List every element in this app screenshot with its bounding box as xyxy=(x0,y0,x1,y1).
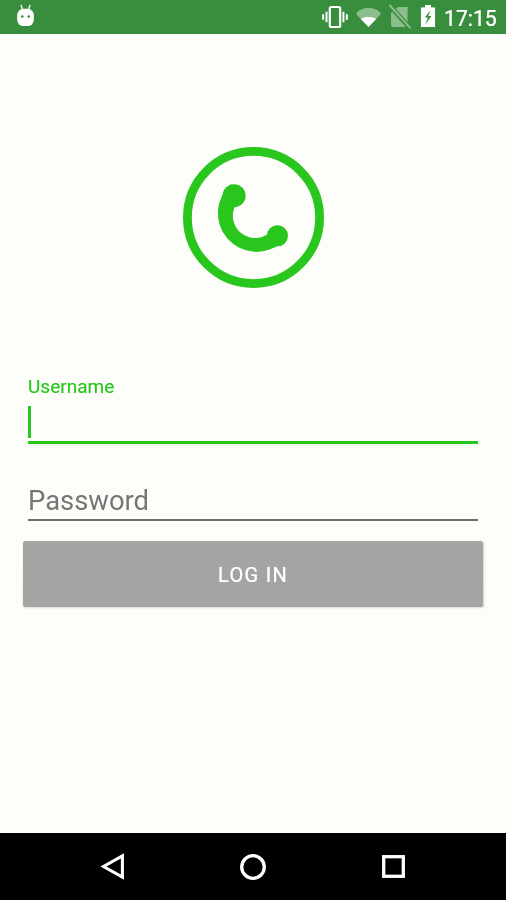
staticText: LOG IN xyxy=(218,563,288,586)
staticText: 17:15 xyxy=(444,6,497,31)
button[interactable]: Username xyxy=(28,373,478,446)
button[interactable]: Back xyxy=(74,833,152,900)
button[interactable]: Recent apps xyxy=(354,833,432,900)
staticText: Password xyxy=(28,485,149,517)
button[interactable]: Home xyxy=(214,833,292,900)
button[interactable]: Password xyxy=(28,446,478,520)
staticText: Username xyxy=(28,375,115,397)
button[interactable]: LOG IN xyxy=(23,541,483,607)
